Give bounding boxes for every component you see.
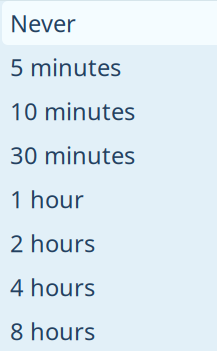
button[interactable]: 4 hours [2, 265, 217, 309]
staticText: 30 minutes [10, 139, 135, 171]
button[interactable]: 30 minutes [2, 133, 217, 177]
staticText: 2 hours [10, 227, 95, 259]
staticText: 4 hours [10, 271, 95, 303]
staticText: 8 hours [10, 315, 95, 347]
button[interactable]: 5 minutes [2, 45, 217, 89]
staticText: 1 hour [10, 183, 84, 215]
button[interactable]: Never [2, 1, 217, 45]
staticText: 5 minutes [10, 51, 121, 83]
staticText: 10 minutes [10, 95, 135, 127]
button[interactable]: 1 hour [2, 177, 217, 221]
button[interactable]: 10 minutes [2, 89, 217, 133]
button[interactable]: 2 hours [2, 221, 217, 265]
staticText: Never [10, 7, 76, 39]
button[interactable]: 8 hours [2, 309, 217, 351]
